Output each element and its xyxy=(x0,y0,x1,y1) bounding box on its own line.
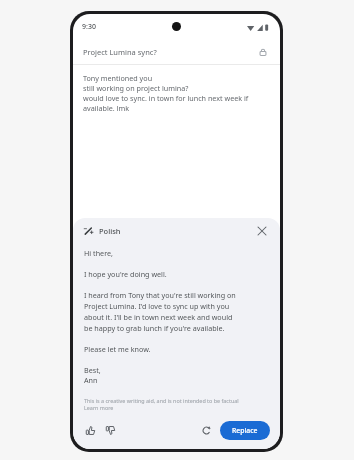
staticText: Tony mentioned you xyxy=(83,73,153,83)
button[interactable]: Learn more xyxy=(84,404,114,411)
button[interactable]: Close xyxy=(254,223,269,238)
staticText: still working on project lumina? xyxy=(83,83,189,93)
staticText: Hi there, xyxy=(84,248,113,258)
staticText: I heard from Tony that you're still work… xyxy=(84,290,236,333)
staticText: would love to sync. in town for lunch ne… xyxy=(83,93,249,103)
staticText: 9:30 xyxy=(82,22,96,32)
staticText: Please let me know. xyxy=(84,344,151,354)
staticText: available. lmk xyxy=(83,103,129,113)
staticText: Learn more xyxy=(84,404,114,411)
button[interactable]: Replace xyxy=(220,421,270,440)
staticText: Project Lumina sync? xyxy=(83,47,157,57)
staticText: Best, xyxy=(84,365,101,375)
button[interactable]: Regenerate xyxy=(198,422,214,438)
staticText: I hope you're doing well. xyxy=(84,269,167,279)
staticText: Polish xyxy=(99,226,121,236)
button[interactable]: Good response xyxy=(83,423,98,438)
button[interactable]: Confidential mode xyxy=(255,44,270,59)
staticText: This is a creative writing aid, and is n… xyxy=(84,397,239,404)
staticText: Ann xyxy=(84,375,98,385)
button[interactable]: Bad response xyxy=(103,423,118,438)
staticText: Replace xyxy=(232,426,258,435)
